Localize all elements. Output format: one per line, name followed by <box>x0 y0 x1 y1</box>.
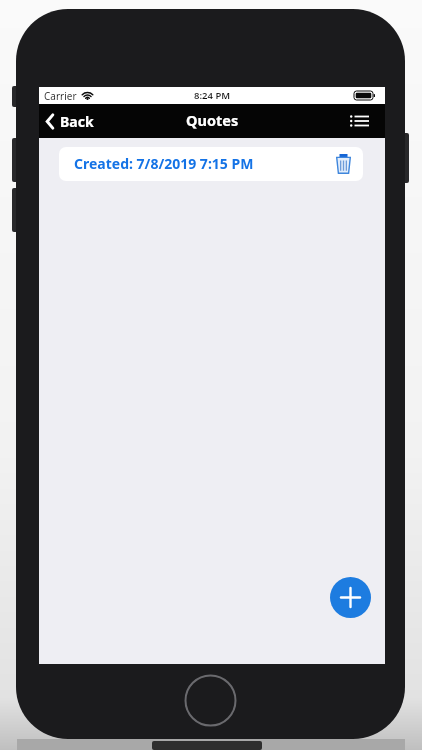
button[interactable] <box>350 115 369 127</box>
button[interactable] <box>336 154 351 174</box>
staticText: Back <box>60 112 94 131</box>
button[interactable] <box>330 577 371 618</box>
staticText: Carrier <box>44 89 77 103</box>
staticText: Quotes <box>186 110 239 130</box>
staticText: Created: 7/8/2019 7:15 PM <box>74 154 254 173</box>
button[interactable]: Created: 7/8/2019 7:15 PM <box>59 147 363 181</box>
button[interactable]: Back <box>46 112 94 131</box>
staticText: 8:24 PM <box>194 89 231 102</box>
